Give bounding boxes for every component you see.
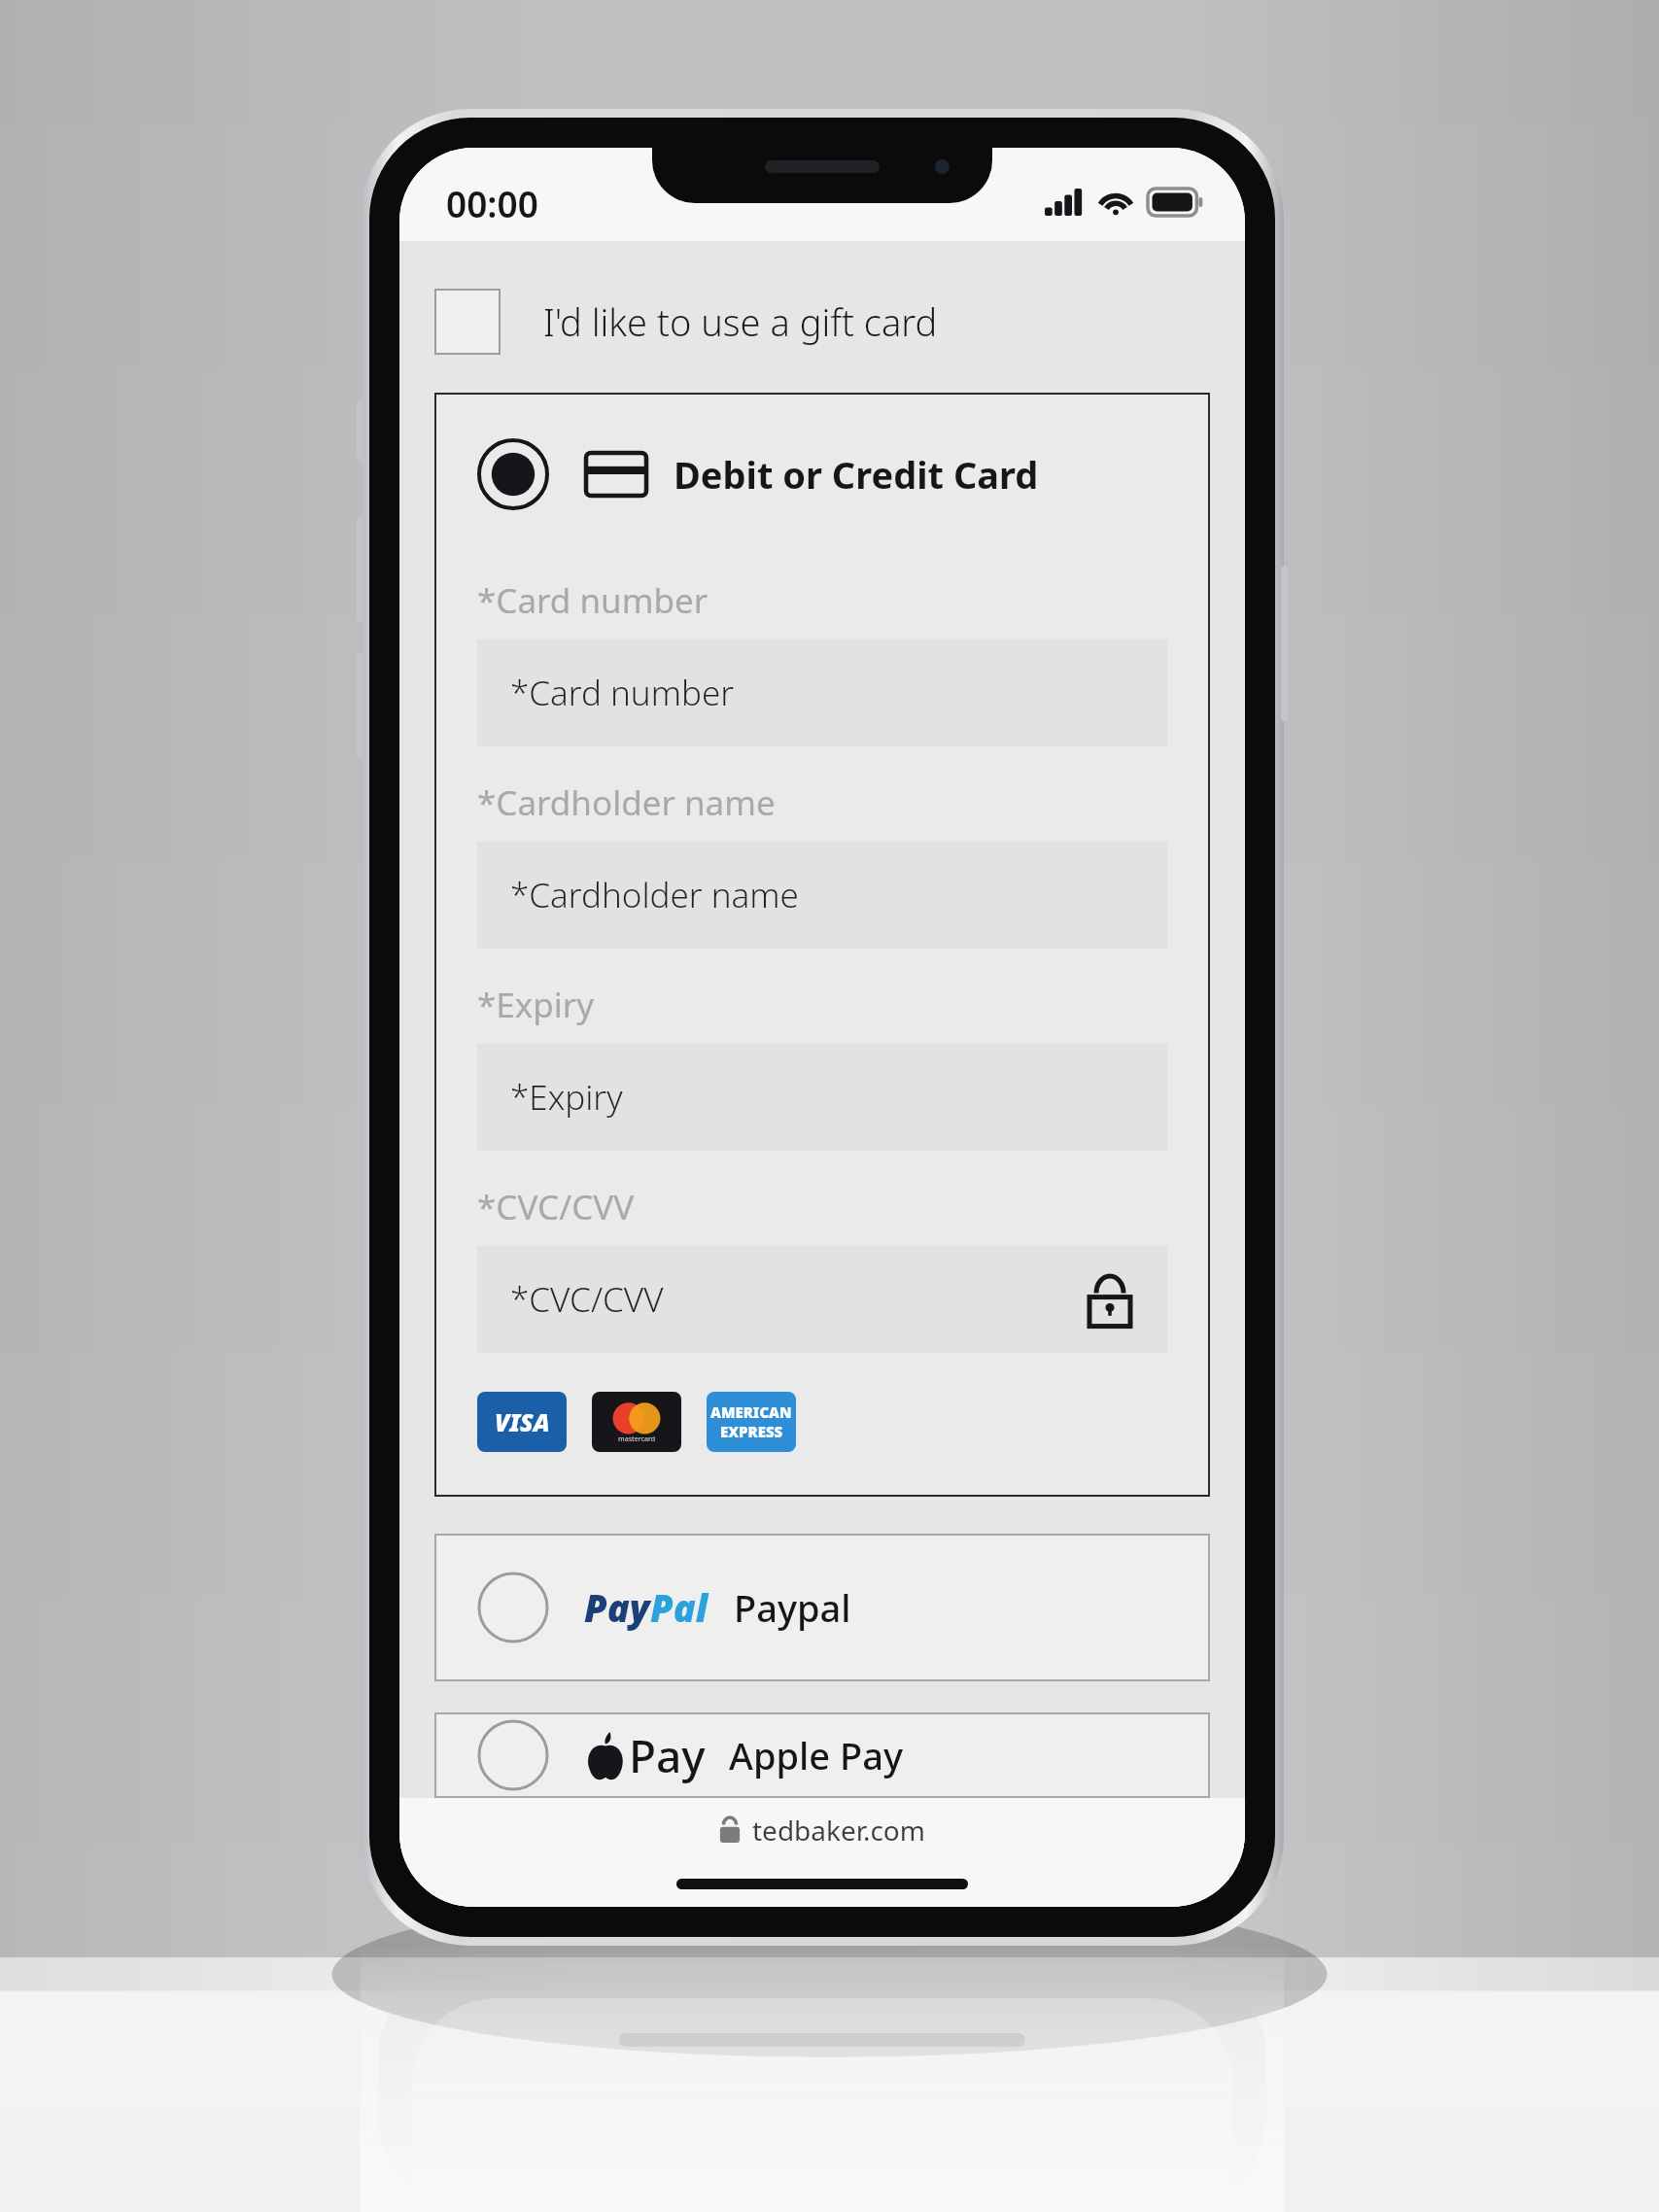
staticText: Paypal bbox=[734, 1582, 851, 1633]
staticText: *CVC/CVV bbox=[510, 1276, 664, 1323]
staticText: I'd like to use a gift card bbox=[543, 296, 938, 347]
staticText: mastercard bbox=[618, 1434, 656, 1444]
staticText: Pal bbox=[650, 1582, 709, 1633]
staticText: tedbaker.com bbox=[752, 1812, 925, 1849]
staticText: *CVC/CVV bbox=[477, 1184, 635, 1230]
other: Secure field bbox=[1086, 1270, 1134, 1329]
staticText: *Card number bbox=[477, 577, 709, 624]
staticText: *Cardholder name bbox=[510, 872, 799, 918]
staticText: EXPRESS bbox=[720, 1422, 783, 1441]
staticText: 00:00 bbox=[446, 179, 538, 227]
button[interactable]: Pay bbox=[434, 1534, 1210, 1681]
staticText: *Card number bbox=[510, 670, 734, 716]
staticText: *Cardholder name bbox=[477, 779, 776, 826]
button[interactable]: *Card number bbox=[477, 639, 1167, 746]
staticText: *Expiry bbox=[477, 982, 595, 1028]
staticText: AMERICAN bbox=[710, 1402, 792, 1422]
staticText: Pay bbox=[629, 1725, 706, 1786]
button[interactable]: I'd like to use a gift card bbox=[434, 264, 1210, 379]
staticText: Debit or Credit Card bbox=[674, 449, 1039, 500]
button[interactable]: *CVC/CVV bbox=[477, 1246, 1167, 1353]
button[interactable]: *Expiry bbox=[477, 1044, 1167, 1151]
button[interactable]: Pay bbox=[434, 1712, 1210, 1798]
button[interactable]: *Cardholder name bbox=[477, 842, 1167, 949]
staticText: Pay bbox=[584, 1582, 650, 1633]
staticText: VISA bbox=[495, 1405, 550, 1438]
button[interactable]: Debit or Credit Card bbox=[477, 426, 1167, 523]
button[interactable]: tedbaker.com bbox=[719, 1812, 925, 1849]
staticText: Apple Pay bbox=[729, 1730, 903, 1780]
staticText: *Expiry bbox=[510, 1074, 623, 1121]
